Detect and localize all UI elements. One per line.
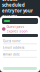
staticText: Guest name [3, 39, 21, 43]
staticText: Arrival date [3, 52, 20, 56]
staticText: Guest pass expires soon [6, 25, 27, 33]
staticText: entry for your guests [2, 8, 33, 20]
button[interactable] [3, 67, 37, 70]
staticText: Email address [3, 46, 24, 50]
staticText: Create scheduled [2, 0, 25, 8]
